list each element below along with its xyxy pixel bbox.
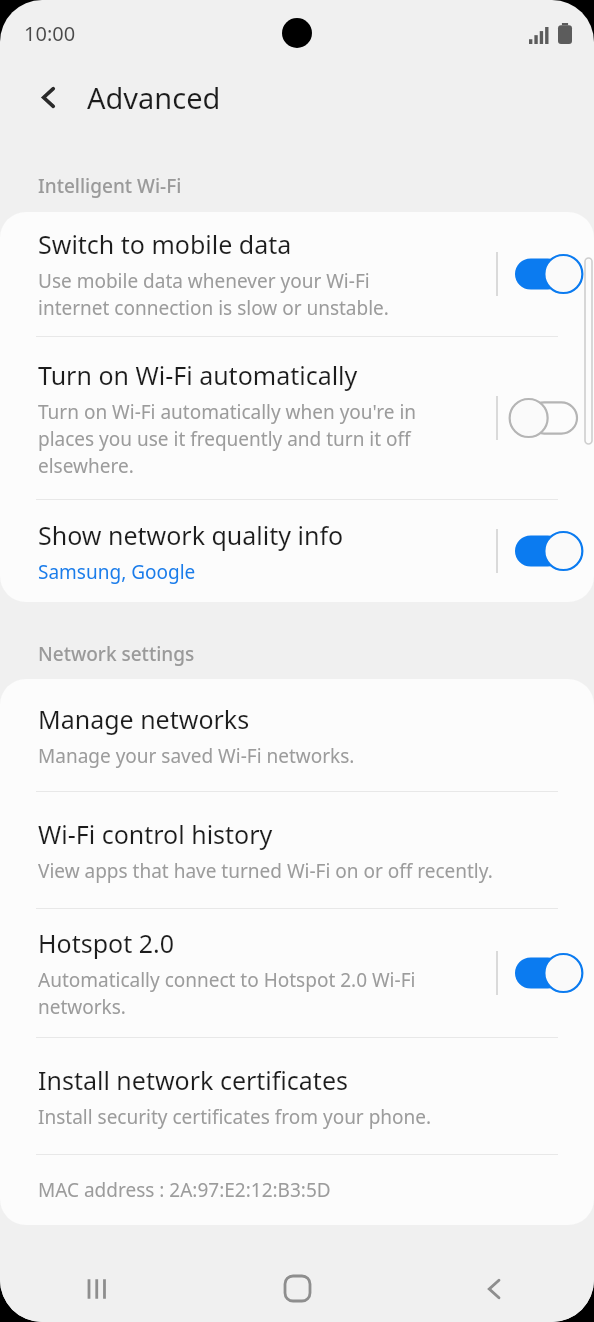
button[interactable]: Wi-Fi control history — [0, 792, 594, 908]
button[interactable]: Turn on Wi-Fi automatically — [498, 337, 594, 499]
staticText: Turn on Wi-Fi automatically when you're … — [38, 399, 417, 479]
staticText: Show network quality info — [38, 518, 344, 552]
staticText: Network settings — [38, 641, 195, 667]
staticText: Automatically connect to Hotspot 2.0 Wi-… — [38, 967, 416, 1020]
button[interactable]: Install network certificates — [0, 1038, 594, 1154]
staticText: Wi-Fi control history — [38, 817, 273, 851]
staticText: Switch to mobile data — [38, 227, 292, 261]
staticText: 10:00 — [24, 20, 76, 47]
button[interactable]: Show network quality info — [498, 500, 594, 602]
staticText: Turn on Wi-Fi automatically — [38, 358, 358, 392]
button[interactable]: Hotspot 2.0 — [498, 909, 594, 1037]
button[interactable]: Recents — [0, 1255, 198, 1322]
staticText: Advanced — [87, 78, 221, 117]
staticText: Intelligent Wi-Fi — [38, 173, 182, 199]
button[interactable]: Hotspot 2.0 — [0, 909, 594, 1037]
button[interactable]: Show network quality info — [0, 500, 594, 602]
staticText: Manage your saved Wi-Fi networks. — [38, 743, 355, 769]
staticText: Install network certificates — [38, 1063, 348, 1097]
staticText: Manage networks — [38, 702, 250, 736]
button[interactable]: Switch to mobile data — [498, 212, 594, 336]
button[interactable]: Turn on Wi-Fi automatically — [0, 337, 594, 499]
button[interactable]: Back — [26, 74, 72, 120]
staticText: Install security certificates from your … — [38, 1104, 432, 1130]
button[interactable]: Manage networks — [0, 679, 594, 791]
button[interactable]: Switch to mobile data — [0, 212, 594, 336]
staticText: Samsung, Google — [38, 559, 196, 585]
staticText: Hotspot 2.0 — [38, 926, 174, 960]
button[interactable]: Back — [396, 1255, 594, 1322]
staticText: Use mobile data whenever your Wi-Fi inte… — [38, 268, 389, 321]
staticText: View apps that have turned Wi-Fi on or o… — [38, 858, 493, 884]
staticText: MAC address : 2A:97:E2:12:B3:5D — [38, 1177, 331, 1203]
button[interactable]: Home — [198, 1255, 396, 1322]
